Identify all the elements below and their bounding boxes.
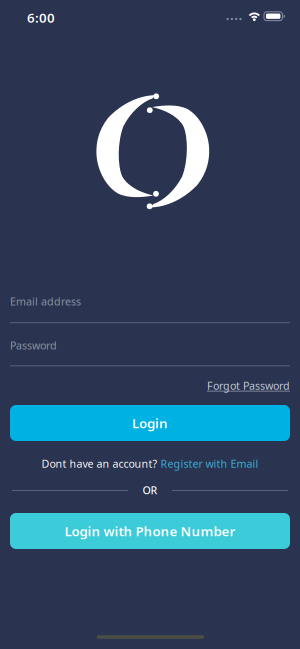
staticText: Email address: [10, 294, 81, 308]
staticText: Forgot Password: [207, 378, 290, 393]
staticText: OR: [142, 483, 157, 497]
staticText: Login with Phone Number: [64, 522, 235, 540]
button[interactable]: Password: [10, 338, 290, 366]
staticText: Register with Email: [160, 456, 258, 471]
staticText: Login: [132, 414, 168, 432]
staticText: Password: [10, 338, 57, 353]
button[interactable]: Login with Phone Number: [10, 513, 290, 549]
button[interactable]: Forgot Password: [207, 378, 290, 393]
staticText: 6:00: [27, 9, 55, 26]
button[interactable]: Email address: [10, 294, 290, 323]
button[interactable]: Register with Email: [160, 456, 258, 471]
button[interactable]: Login: [10, 405, 290, 441]
staticText: Dont have an account?: [41, 456, 157, 471]
